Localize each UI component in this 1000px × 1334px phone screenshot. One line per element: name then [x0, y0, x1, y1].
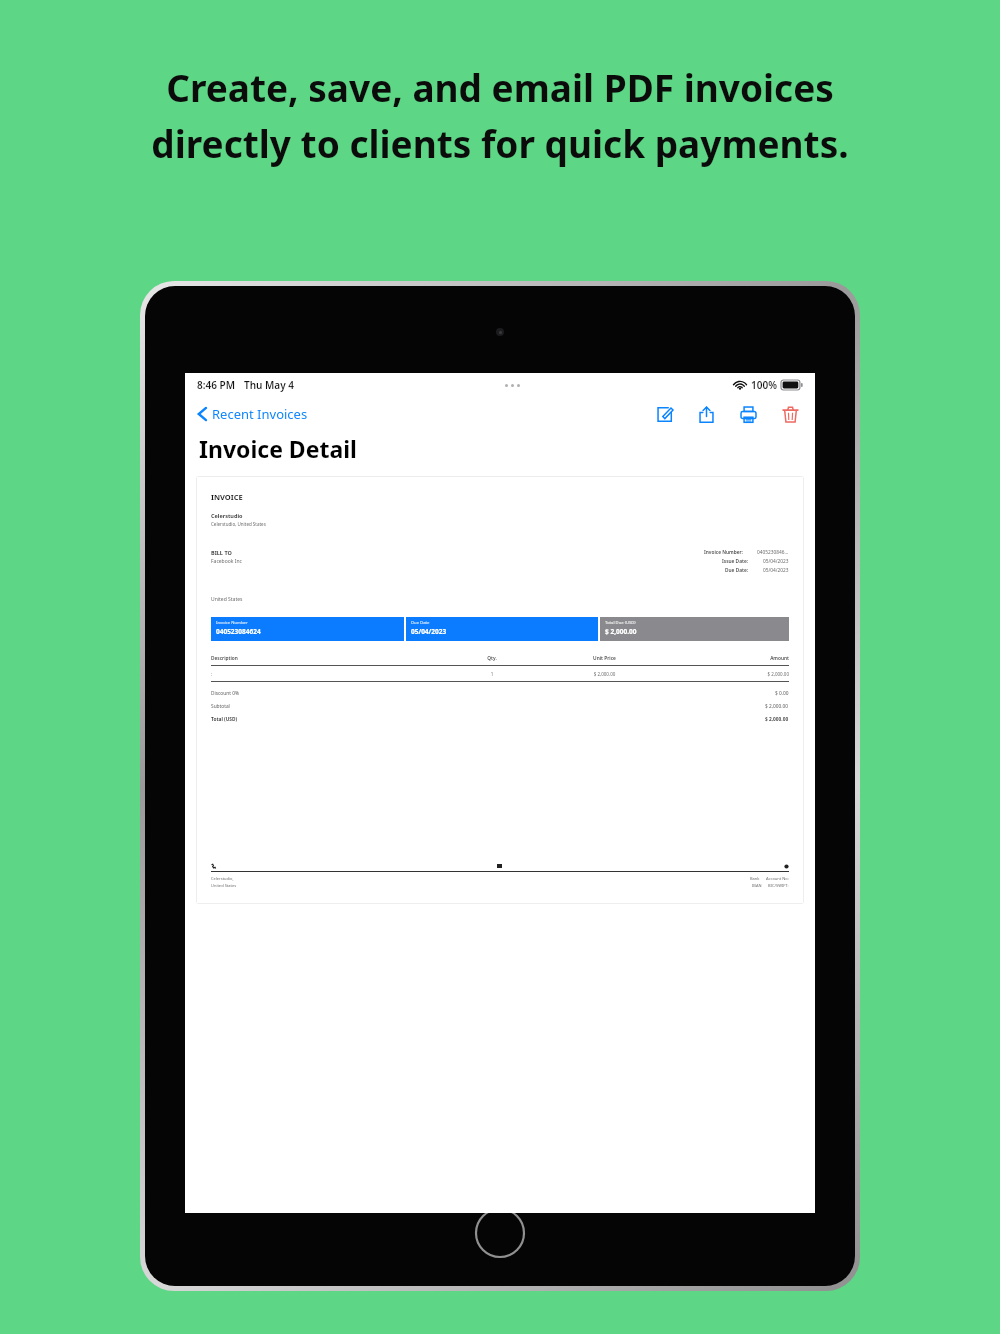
staticText: Thu May 4 — [244, 378, 294, 392]
staticText: 0405230846… — [757, 549, 789, 556]
staticText: BIC/SWIFT: — [768, 883, 789, 888]
staticText: 1 — [443, 671, 541, 677]
staticText: BILL TO — [211, 549, 232, 556]
staticText: Amount — [668, 655, 789, 662]
staticText: 05/04/2023 — [763, 558, 789, 565]
button[interactable]: Recent Invoices — [197, 405, 314, 423]
staticText: United States — [211, 596, 243, 603]
staticText: directly to clients for quick payments. — [151, 118, 849, 168]
staticText: Due Date — [411, 620, 430, 626]
staticText: Recent Invoices — [212, 405, 308, 423]
staticText: Celerstudio, United States — [211, 521, 266, 527]
staticText: $ 0.00 — [775, 690, 789, 697]
staticText: Celerstudio, — [211, 876, 234, 881]
staticText: Total Due (USD) — [605, 620, 636, 626]
staticText: Qty. — [443, 655, 541, 662]
staticText: 040523084624 — [216, 627, 261, 636]
staticText: Invoice Number — [216, 620, 248, 626]
staticText: $ 2,000.00 — [541, 671, 668, 677]
staticText: Description — [211, 655, 443, 662]
staticText: Bank — [750, 876, 760, 881]
button[interactable]: Delete invoice — [777, 401, 803, 427]
staticText: IBAN — [752, 883, 762, 888]
staticText: $ 2,000.00 — [668, 671, 789, 677]
button[interactable]: Share invoice — [693, 401, 719, 427]
staticText: Subtotal — [211, 703, 230, 710]
button[interactable]: Print invoice — [735, 401, 761, 427]
staticText: INVOICE — [211, 492, 243, 502]
button[interactable]: Edit invoice — [651, 401, 677, 427]
staticText: 100% — [751, 378, 777, 392]
staticText: Celerstudio — [211, 512, 243, 519]
button[interactable]: INVOICE — [196, 476, 804, 904]
staticText: Invoice Number: — [704, 549, 743, 556]
staticText: Facebook Inc — [211, 558, 242, 565]
staticText: 8:46 PM — [197, 378, 235, 392]
staticText: Account No: — [766, 876, 789, 881]
staticText: Create, save, and email PDF invoices — [166, 62, 834, 112]
staticText: United States — [211, 883, 237, 888]
staticText: Due Date: — [725, 567, 749, 574]
staticText: Total (USD) — [211, 716, 238, 723]
staticText: Invoice Detail — [199, 433, 357, 464]
staticText: $ 2,000.00 — [765, 703, 789, 710]
staticText: Unit Price — [541, 655, 668, 662]
staticText: Discount 0% — [211, 690, 239, 697]
staticText: 05/04/2023 — [411, 627, 447, 636]
staticText: 05/04/2023 — [763, 567, 789, 574]
staticText: $ 2,000.00 — [605, 627, 637, 636]
staticText: $ 2,000.00 — [765, 716, 789, 723]
staticText: Issue Date: — [722, 558, 749, 565]
